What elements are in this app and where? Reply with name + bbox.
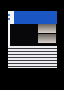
button[interactable] [8, 47, 57, 50]
button[interactable] [8, 65, 57, 68]
button[interactable] [8, 53, 57, 56]
button[interactable] [38, 24, 56, 33]
button[interactable] [8, 62, 57, 65]
button[interactable] [8, 50, 57, 53]
button[interactable] [8, 59, 57, 62]
button[interactable] [38, 34, 56, 43]
button[interactable] [8, 56, 57, 59]
